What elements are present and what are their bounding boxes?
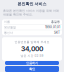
staticText: 확인: [29, 67, 35, 71]
staticText: 34,000: [21, 45, 43, 53]
staticText: 휴대폰 본인확인 서비스 이용을 위해 아래 내용을 확인해 주세요.: [3, 9, 59, 16]
staticText: 인증번호를 입력해 주세요: [14, 40, 49, 44]
staticText: 통신사: [4, 31, 13, 34]
staticText: 1990.01.01: [45, 25, 60, 29]
staticText: 생년월일: [4, 25, 16, 29]
staticText: 이름: [4, 20, 10, 24]
staticText: SKT: [54, 31, 60, 34]
staticText: 남은 시간 02:59: [20, 54, 43, 58]
staticText: 본인확인 서비스: [17, 1, 46, 6]
button[interactable]: 인증하기: [5, 61, 59, 65]
button[interactable]: 확인: [5, 66, 59, 72]
staticText: 인증하기: [26, 61, 38, 65]
staticText: 홍길동: [51, 20, 60, 24]
